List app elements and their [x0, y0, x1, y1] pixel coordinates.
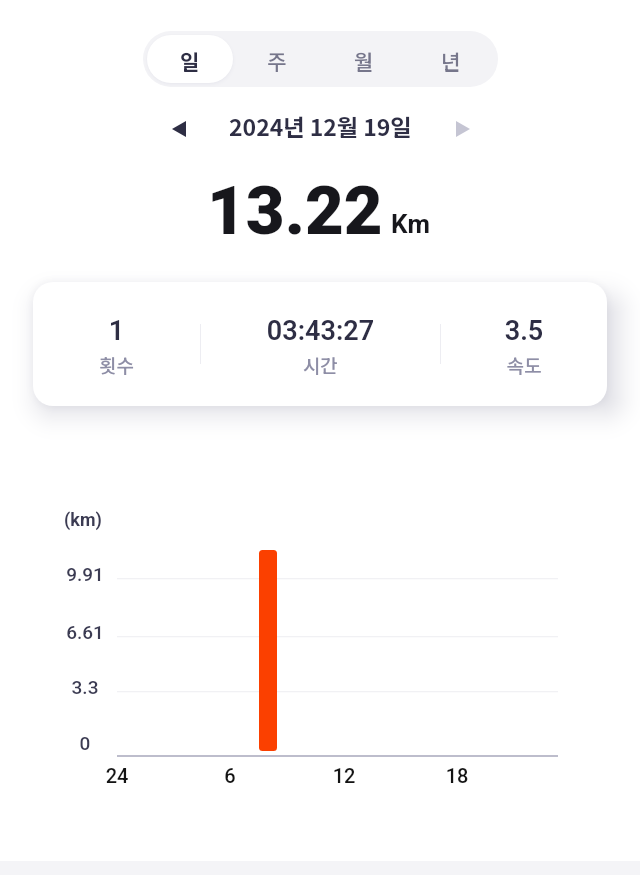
staticText: (km)	[64, 509, 102, 530]
button[interactable]: 1	[33, 282, 200, 406]
staticText: 3.3	[45, 676, 125, 698]
staticText: 6	[200, 764, 260, 787]
staticText: 1	[33, 315, 200, 347]
staticText: 2024년 12월 19일	[229, 109, 412, 142]
staticText: 18	[427, 764, 487, 787]
staticText: 03:43:27	[201, 315, 440, 347]
button[interactable]: 월	[320, 35, 407, 83]
staticText: 9.91	[45, 563, 125, 585]
button[interactable]: 주	[233, 35, 320, 83]
staticText: 횟수	[33, 351, 200, 379]
staticText: 일	[180, 46, 200, 76]
button[interactable]: Previous day	[157, 107, 201, 151]
button[interactable]: 03:43:27	[201, 282, 440, 406]
staticText: Km	[391, 209, 430, 239]
staticText: 24	[87, 764, 147, 787]
staticText: 주	[267, 46, 287, 76]
button[interactable]: Next day	[441, 107, 485, 151]
staticText: 13.22	[207, 172, 383, 251]
staticText: 0	[45, 732, 125, 754]
staticText: 3.5	[441, 315, 607, 347]
staticText: 년	[441, 46, 461, 76]
button[interactable]: 3.5	[441, 282, 607, 406]
staticText: 시간	[201, 351, 440, 379]
staticText: 속도	[441, 351, 607, 379]
staticText: 12	[314, 764, 374, 787]
button[interactable]: 년	[407, 35, 494, 83]
staticText: 월	[354, 46, 374, 76]
button[interactable]: 일	[147, 35, 233, 83]
staticText: 6.61	[45, 621, 125, 643]
